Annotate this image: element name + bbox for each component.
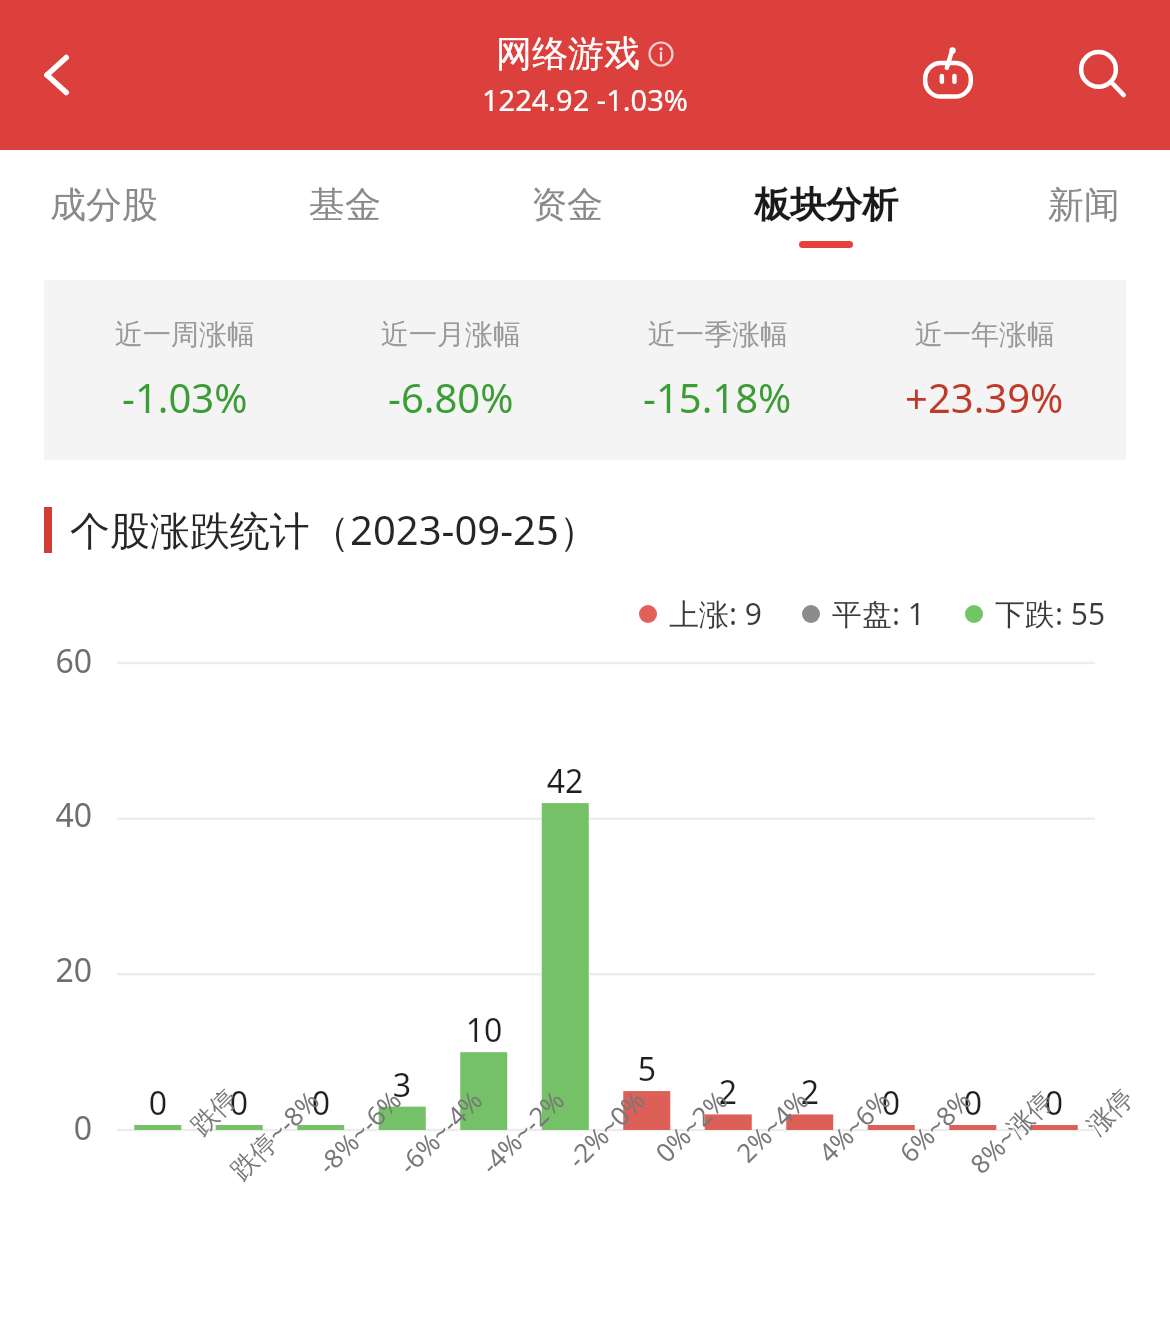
staticText: 0: [281, 1081, 361, 1125]
button[interactable]: 近一年涨幅: [851, 317, 1118, 424]
staticText: 近一月涨幅: [381, 317, 521, 352]
staticText: 资金: [531, 182, 603, 227]
button[interactable]: 平盘: 1: [802, 593, 925, 634]
staticText: 近一年涨幅: [915, 317, 1055, 352]
staticText: 8%~涨停: [894, 1083, 1060, 1249]
staticText: 0: [199, 1081, 279, 1125]
button[interactable]: 上涨: 9: [639, 593, 762, 634]
staticText: 1224.92 -1.03%: [482, 80, 688, 119]
staticText: -6%~-4%: [323, 1082, 489, 1249]
staticText: -6.80%: [388, 370, 514, 424]
staticText: 6%~8%: [812, 1082, 978, 1249]
button[interactable]: 下跌: 55: [965, 593, 1106, 634]
staticText: 2: [770, 1070, 850, 1114]
staticText: 板块分析: [754, 182, 898, 227]
button[interactable]: 板块分析: [744, 174, 908, 256]
staticText: 3: [362, 1063, 442, 1107]
staticText: -1.03%: [122, 370, 248, 424]
staticText: 4%~6%: [731, 1082, 897, 1249]
button[interactable]: 成分股: [40, 174, 168, 256]
staticText: 0: [20, 1106, 92, 1150]
staticText: -15.18%: [643, 370, 792, 424]
staticText: 涨停: [976, 1082, 1140, 1247]
staticText: 2: [688, 1070, 768, 1114]
staticText: 5: [607, 1047, 687, 1091]
staticText: 0: [118, 1081, 198, 1125]
staticText: 上涨: 9: [669, 593, 762, 634]
staticText: 0%~2%: [568, 1082, 734, 1249]
staticText: 2%~4%: [649, 1082, 815, 1249]
button[interactable]: Assistant: [905, 32, 991, 118]
staticText: 个股涨跌统计（2023-09-25）: [70, 502, 599, 557]
staticText: -2%~0%: [486, 1082, 652, 1249]
staticText: 40: [20, 793, 92, 837]
button[interactable]: 近一周涨幅: [52, 317, 318, 424]
button[interactable]: 近一季涨幅: [584, 317, 851, 424]
staticText: 网络游戏: [496, 31, 640, 76]
staticText: 10: [444, 1008, 524, 1052]
button[interactable]: Back: [18, 35, 98, 115]
staticText: -8%~-6%: [242, 1082, 408, 1249]
button[interactable]: 资金: [521, 174, 613, 256]
staticText: 下跌: 55: [995, 593, 1106, 634]
button[interactable]: 近一月涨幅: [318, 317, 584, 424]
staticText: 跌停: [80, 1082, 244, 1247]
staticText: +23.39%: [905, 370, 1064, 424]
staticText: 42: [525, 759, 605, 803]
button[interactable]: Search: [1060, 32, 1146, 118]
staticText: 0: [1014, 1081, 1094, 1125]
staticText: 20: [20, 948, 92, 992]
staticText: 平盘: 1: [832, 593, 925, 634]
staticText: 0: [851, 1081, 931, 1125]
staticText: 新闻: [1048, 182, 1120, 227]
button[interactable]: 新闻: [1038, 174, 1130, 256]
button[interactable]: Info: [648, 41, 674, 67]
staticText: 0: [933, 1081, 1013, 1125]
button[interactable]: 基金: [299, 174, 391, 256]
staticText: -4%~-2%: [405, 1082, 571, 1249]
staticText: 跌停~-8%: [160, 1083, 326, 1249]
staticText: 成分股: [50, 182, 158, 227]
staticText: 近一周涨幅: [115, 317, 255, 352]
staticText: 近一季涨幅: [648, 317, 788, 352]
staticText: 60: [20, 639, 92, 683]
staticText: 基金: [309, 182, 381, 227]
